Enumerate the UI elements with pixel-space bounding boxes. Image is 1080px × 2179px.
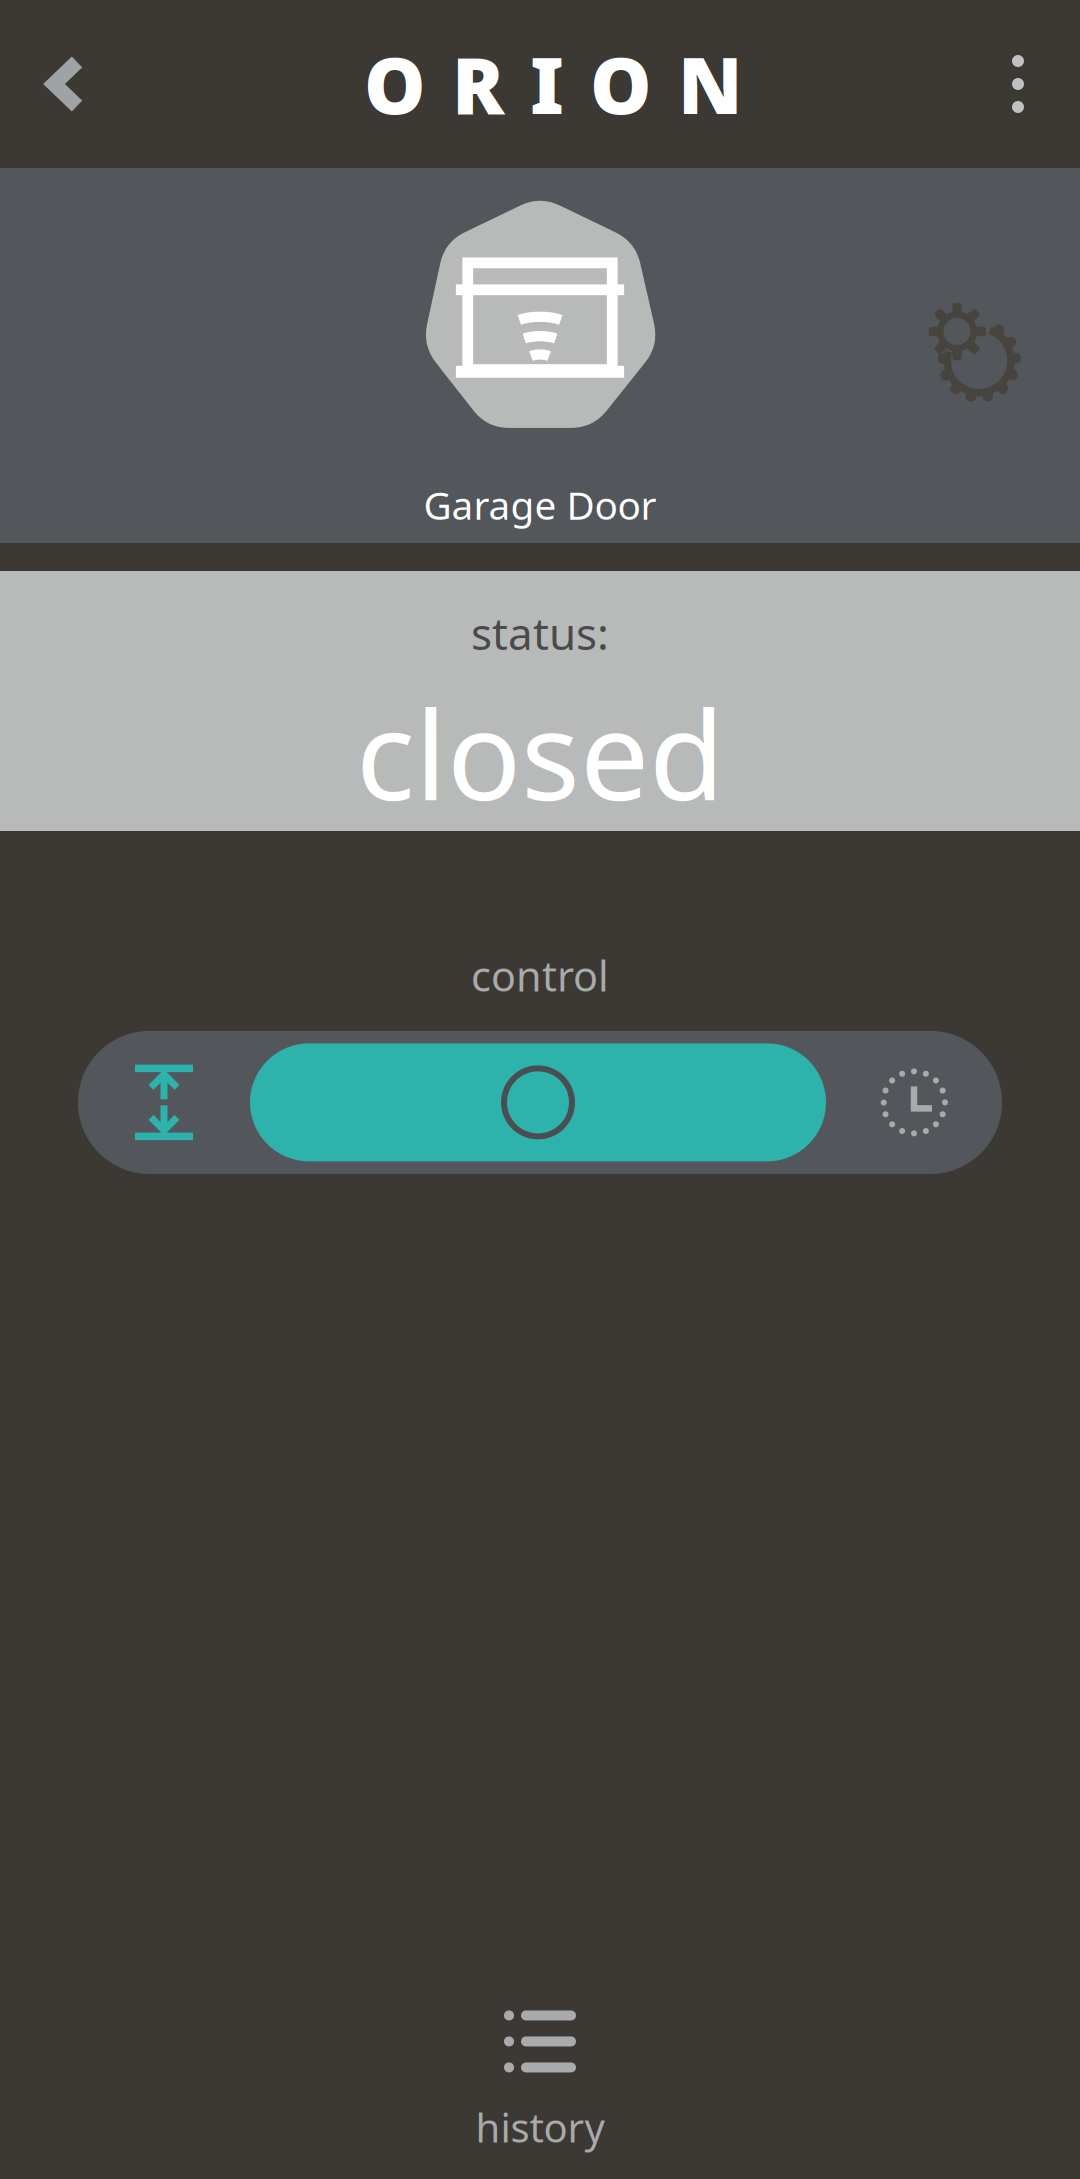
button[interactable]: Settings xyxy=(900,265,1080,445)
staticText: status: xyxy=(471,604,609,662)
button[interactable]: More options xyxy=(956,0,1080,168)
button[interactable]: history xyxy=(380,2007,700,2157)
button[interactable]: Operate door xyxy=(250,1031,826,1174)
button[interactable]: Back xyxy=(0,0,124,168)
staticText: Garage Door xyxy=(423,479,656,530)
staticText: control xyxy=(471,948,609,1003)
staticText: closed xyxy=(356,671,724,834)
staticText: history xyxy=(475,2100,604,2153)
button[interactable]: Toggle door xyxy=(78,1031,250,1174)
staticText: ORION xyxy=(364,33,742,135)
button[interactable]: Schedule xyxy=(826,1031,1002,1174)
